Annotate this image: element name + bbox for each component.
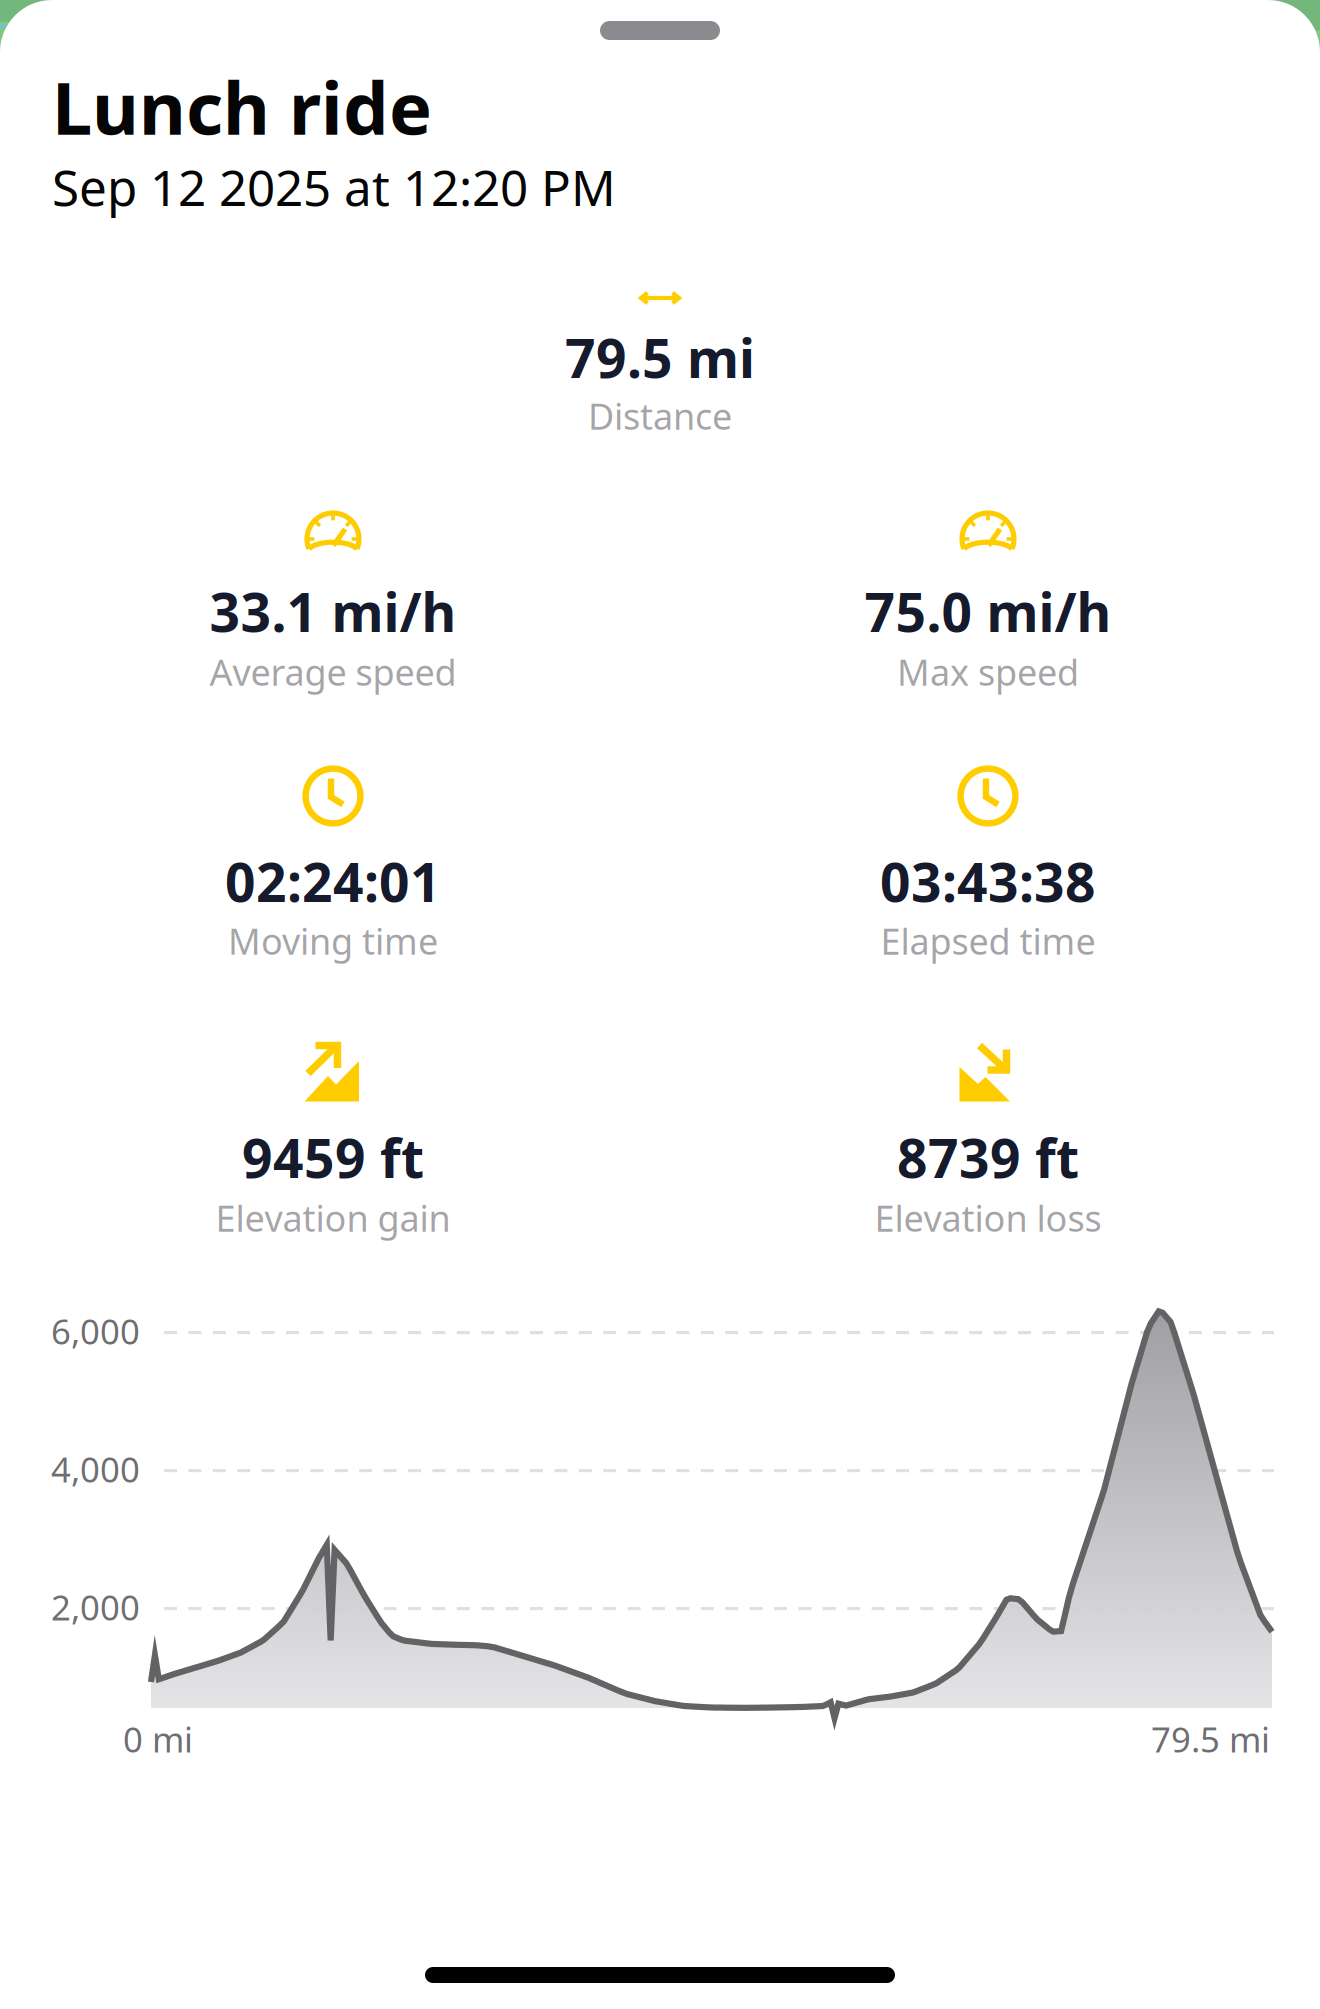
staticText: Max speed [897,648,1079,696]
staticText: 2,000 [51,1584,140,1630]
staticText: 9459 ft [242,1122,424,1193]
staticText: 79.5 mi [1151,1716,1270,1762]
staticText: Distance [588,392,732,440]
staticText: 33.1 mi/h [209,576,456,647]
staticText: 79.5 mi [565,322,755,393]
staticText: Elevation loss [874,1194,1101,1242]
staticText: Moving time [228,917,438,965]
staticText: 8739 ft [897,1122,1079,1193]
staticText: Elevation gain [215,1194,450,1242]
staticText: 75.0 mi/h [864,576,1111,647]
staticText: 03:43:38 [880,846,1096,917]
staticText: Elapsed time [880,917,1095,965]
staticText: 4,000 [51,1446,140,1492]
staticText: 0 mi [123,1716,193,1762]
staticText: Sep 12 2025 at 12:20 PM [52,154,616,219]
staticText: 6,000 [51,1308,140,1354]
staticText: Average speed [209,648,456,696]
button[interactable]: Dismiss [600,21,720,40]
staticText: Lunch ride [52,59,432,155]
staticText: 02:24:01 [225,846,441,917]
